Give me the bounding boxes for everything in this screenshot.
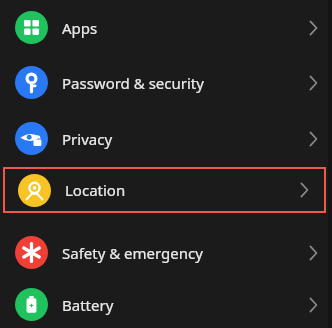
button[interactable]: Battery xyxy=(0,281,332,328)
staticText: Password & security xyxy=(62,73,310,93)
staticText: Apps xyxy=(62,18,310,38)
button[interactable]: Password & security xyxy=(0,55,332,110)
button[interactable]: Safety & emergency xyxy=(0,213,332,281)
staticText: Battery xyxy=(62,295,310,315)
button[interactable]: Apps xyxy=(0,0,332,55)
button[interactable]: Privacy xyxy=(0,110,332,167)
staticText: Location xyxy=(65,180,304,200)
button[interactable]: Location xyxy=(3,167,326,213)
staticText: Privacy xyxy=(62,129,310,149)
staticText: Safety & emergency xyxy=(62,243,310,263)
